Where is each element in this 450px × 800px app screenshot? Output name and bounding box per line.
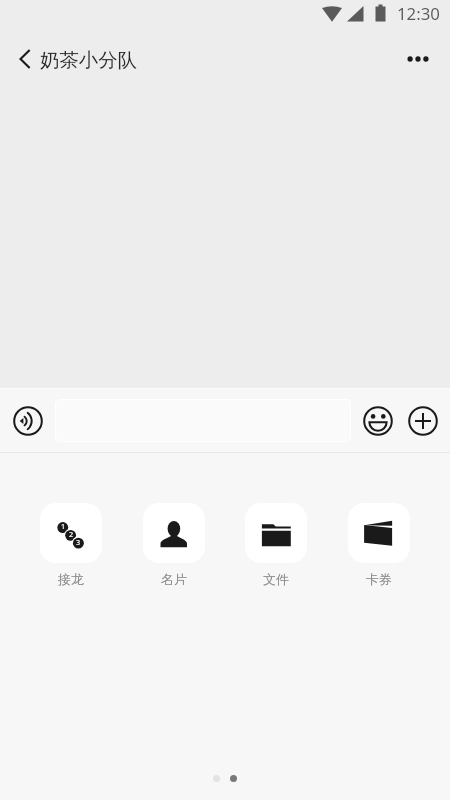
staticText: 3 bbox=[76, 537, 81, 547]
button[interactable]: 1 bbox=[40, 503, 102, 587]
button[interactable]: 卡券 bbox=[348, 503, 410, 587]
button[interactable]: 名片 bbox=[143, 503, 205, 587]
staticText: 1 bbox=[61, 521, 66, 531]
button[interactable]: 文件 bbox=[245, 503, 307, 587]
button[interactable]: More functions bbox=[402, 400, 444, 442]
staticText: 接龙 bbox=[58, 571, 84, 587]
button[interactable]: Back bbox=[0, 35, 48, 83]
staticText: 文件 bbox=[263, 571, 289, 587]
button[interactable]: Voice input bbox=[7, 400, 49, 442]
button[interactable]: More options bbox=[394, 35, 442, 83]
staticText: 12:30 bbox=[397, 2, 440, 25]
staticText: 奶茶小分队 bbox=[40, 48, 137, 72]
staticText: 卡券 bbox=[366, 571, 392, 587]
button[interactable]: Emoji bbox=[357, 400, 399, 442]
staticText: 名片 bbox=[161, 571, 187, 587]
staticText: 2 bbox=[69, 529, 74, 539]
